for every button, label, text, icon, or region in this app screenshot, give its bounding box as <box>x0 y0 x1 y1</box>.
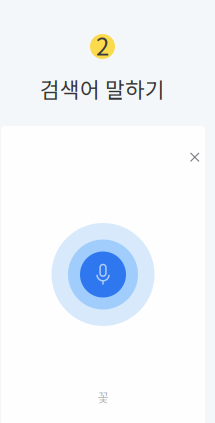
staticText: 검색어 말하기 <box>40 73 165 104</box>
button[interactable]: 꽃 <box>83 383 122 412</box>
staticText: 2 <box>96 28 109 62</box>
button[interactable]: Close <box>179 142 205 172</box>
button[interactable]: Voice search <box>51 223 154 326</box>
staticText: 꽃 <box>97 389 108 406</box>
